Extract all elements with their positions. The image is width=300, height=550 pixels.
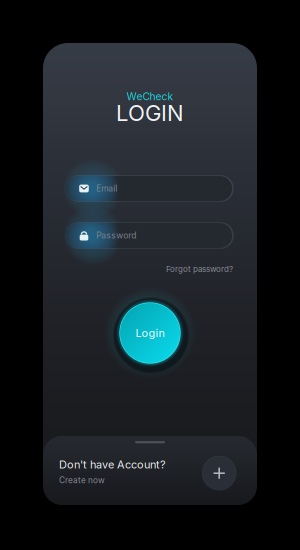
- button[interactable]: Create account: [199, 453, 239, 493]
- staticText: Don't have Account?: [59, 458, 166, 471]
- staticText: Password: [96, 230, 136, 241]
- staticText: Create now: [59, 475, 105, 485]
- button[interactable]: Forgot password?: [166, 264, 233, 274]
- staticText: Email: [96, 183, 117, 194]
- staticText: LOGIN: [116, 100, 184, 126]
- staticText: WeCheck: [126, 90, 173, 103]
- button[interactable]: Login: [102, 285, 198, 381]
- staticText: Login: [135, 326, 164, 340]
- staticText: Forgot password?: [166, 264, 233, 274]
